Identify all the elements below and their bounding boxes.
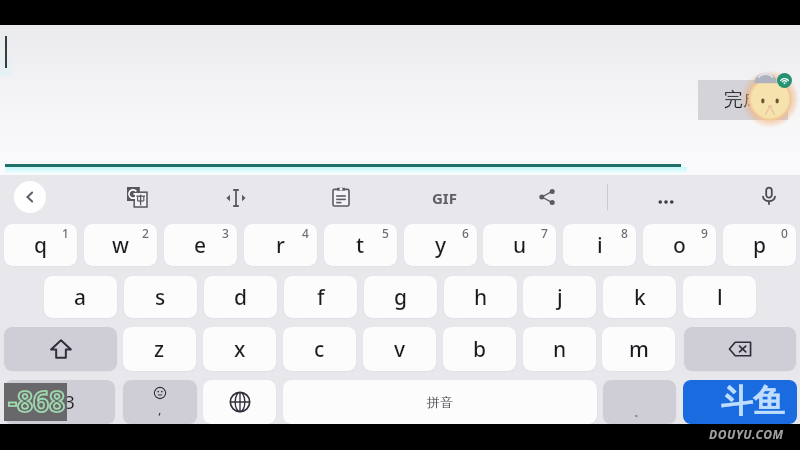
button[interactable]: Key q xyxy=(4,224,77,266)
staticText: w xyxy=(112,231,129,260)
button[interactable]: Key c xyxy=(283,327,356,371)
button[interactable]: Clipboard xyxy=(326,182,356,212)
button[interactable]: Share xyxy=(532,182,562,212)
staticText: c xyxy=(314,335,325,364)
staticText: r xyxy=(276,231,285,260)
button[interactable]: Enter xyxy=(683,380,797,424)
button[interactable]: Language xyxy=(203,380,276,424)
button[interactable]: Key k xyxy=(603,276,676,318)
staticText: k xyxy=(634,283,646,312)
button[interactable]: GIF xyxy=(424,188,464,206)
button[interactable]: Period xyxy=(603,380,676,424)
button[interactable]: Key b xyxy=(443,327,516,371)
staticText: o xyxy=(673,231,686,260)
staticText: 9 xyxy=(701,225,708,241)
staticText: 6 xyxy=(462,225,469,241)
staticText: -868 xyxy=(8,382,66,420)
button[interactable]: Symbols xyxy=(4,380,115,424)
staticText: 5 xyxy=(382,225,389,241)
button[interactable]: Key f xyxy=(284,276,357,318)
staticText: ?123 xyxy=(36,390,75,415)
staticText: 4 xyxy=(302,225,309,241)
button[interactable]: Key m xyxy=(602,327,675,371)
staticText: 3 xyxy=(222,225,229,241)
button[interactable]: Key o xyxy=(643,224,716,266)
button[interactable]: Emoji xyxy=(123,380,197,424)
button[interactable]: Key y xyxy=(404,224,477,266)
staticText: 拼音 xyxy=(427,394,453,410)
button[interactable]: Key w xyxy=(84,224,157,266)
button[interactable]: Key x xyxy=(203,327,276,371)
button[interactable]: Key v xyxy=(363,327,436,371)
staticText: g xyxy=(394,283,408,312)
staticText: a xyxy=(74,283,87,312)
button[interactable]: Key g xyxy=(364,276,437,318)
staticText: v xyxy=(394,335,406,364)
staticText: x xyxy=(234,335,246,364)
other: Connected xyxy=(777,73,792,88)
button[interactable]: Space xyxy=(283,380,597,424)
staticText: q xyxy=(34,231,48,260)
button[interactable]: Key p xyxy=(723,224,796,266)
staticText: 斗鱼 xyxy=(721,381,785,421)
staticText: 7 xyxy=(541,225,548,241)
staticText: e xyxy=(194,231,207,260)
staticText: p xyxy=(753,231,767,260)
staticText: h xyxy=(474,283,488,312)
staticText: 完成 xyxy=(724,88,762,112)
staticText: 0 xyxy=(781,225,788,241)
button[interactable]: Voice input xyxy=(754,181,784,211)
button[interactable]: Key s xyxy=(124,276,197,318)
staticText: i xyxy=(597,231,603,260)
button[interactable]: Key t xyxy=(324,224,397,266)
button[interactable]: Backspace xyxy=(684,327,796,371)
staticText: 。 xyxy=(634,405,645,419)
button[interactable]: Key n xyxy=(523,327,596,371)
staticText: 2 xyxy=(142,225,149,241)
staticText: 8 xyxy=(621,225,628,241)
staticText: s xyxy=(155,283,166,312)
staticText: b xyxy=(473,335,487,364)
staticText: 1 xyxy=(62,225,69,241)
staticText: , xyxy=(158,400,162,418)
staticText: n xyxy=(553,335,567,364)
staticText: m xyxy=(629,335,649,364)
button[interactable]: Key h xyxy=(444,276,517,318)
button[interactable]: Key e xyxy=(164,224,237,266)
button[interactable]: Key a xyxy=(44,276,117,318)
button[interactable]: Key i xyxy=(563,224,636,266)
staticText: l xyxy=(717,283,723,312)
button[interactable]: Back xyxy=(14,181,46,213)
button[interactable]: 完成 xyxy=(698,80,788,120)
button[interactable]: Shift xyxy=(4,327,117,371)
button[interactable]: Key z xyxy=(123,327,196,371)
staticText: GIF xyxy=(432,188,457,206)
button[interactable]: More xyxy=(650,186,682,218)
button[interactable]: Key d xyxy=(204,276,277,318)
staticText: j xyxy=(557,283,563,312)
staticText: d xyxy=(234,283,248,312)
staticText: y xyxy=(435,231,447,260)
button[interactable]: Move cursor xyxy=(221,183,251,213)
staticText: z xyxy=(154,335,165,364)
staticText: f xyxy=(317,283,325,312)
button[interactable]: Key l xyxy=(683,276,756,318)
staticText: t xyxy=(356,231,365,260)
button[interactable]: Key r xyxy=(244,224,317,266)
staticText: DOUYU.COM xyxy=(709,426,784,442)
button[interactable]: Translate xyxy=(122,182,152,212)
button[interactable]: Key u xyxy=(483,224,556,266)
staticText: u xyxy=(513,231,527,260)
button[interactable]: Key j xyxy=(523,276,596,318)
